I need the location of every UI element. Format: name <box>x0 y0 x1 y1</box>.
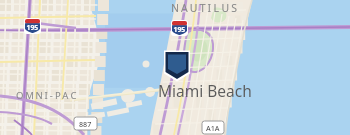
button[interactable]: Map of Miami Beach <box>0 0 350 135</box>
other: Selected location marker <box>0 0 350 135</box>
